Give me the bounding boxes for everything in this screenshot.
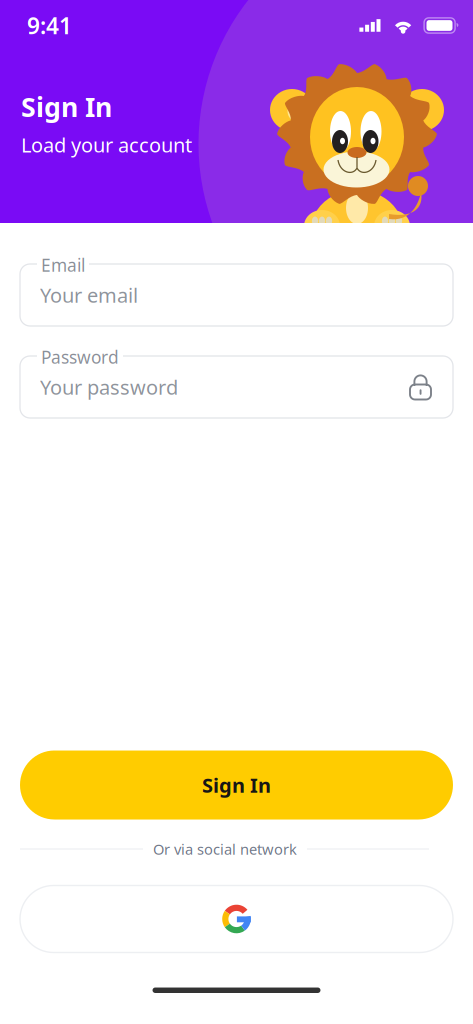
staticText: Your password (40, 374, 178, 400)
staticText: Your email (40, 282, 138, 308)
button[interactable]: Sign in with Google (20, 885, 453, 952)
staticText: Sign In (202, 772, 271, 798)
button[interactable]: Sign In (20, 750, 453, 819)
staticText: Or via social network (153, 839, 297, 859)
staticText: Email (41, 253, 85, 276)
staticText: Load your account (21, 131, 192, 158)
staticText: Password (41, 345, 119, 368)
staticText: Sign In (21, 89, 112, 124)
staticText: 9:41 (27, 10, 72, 40)
